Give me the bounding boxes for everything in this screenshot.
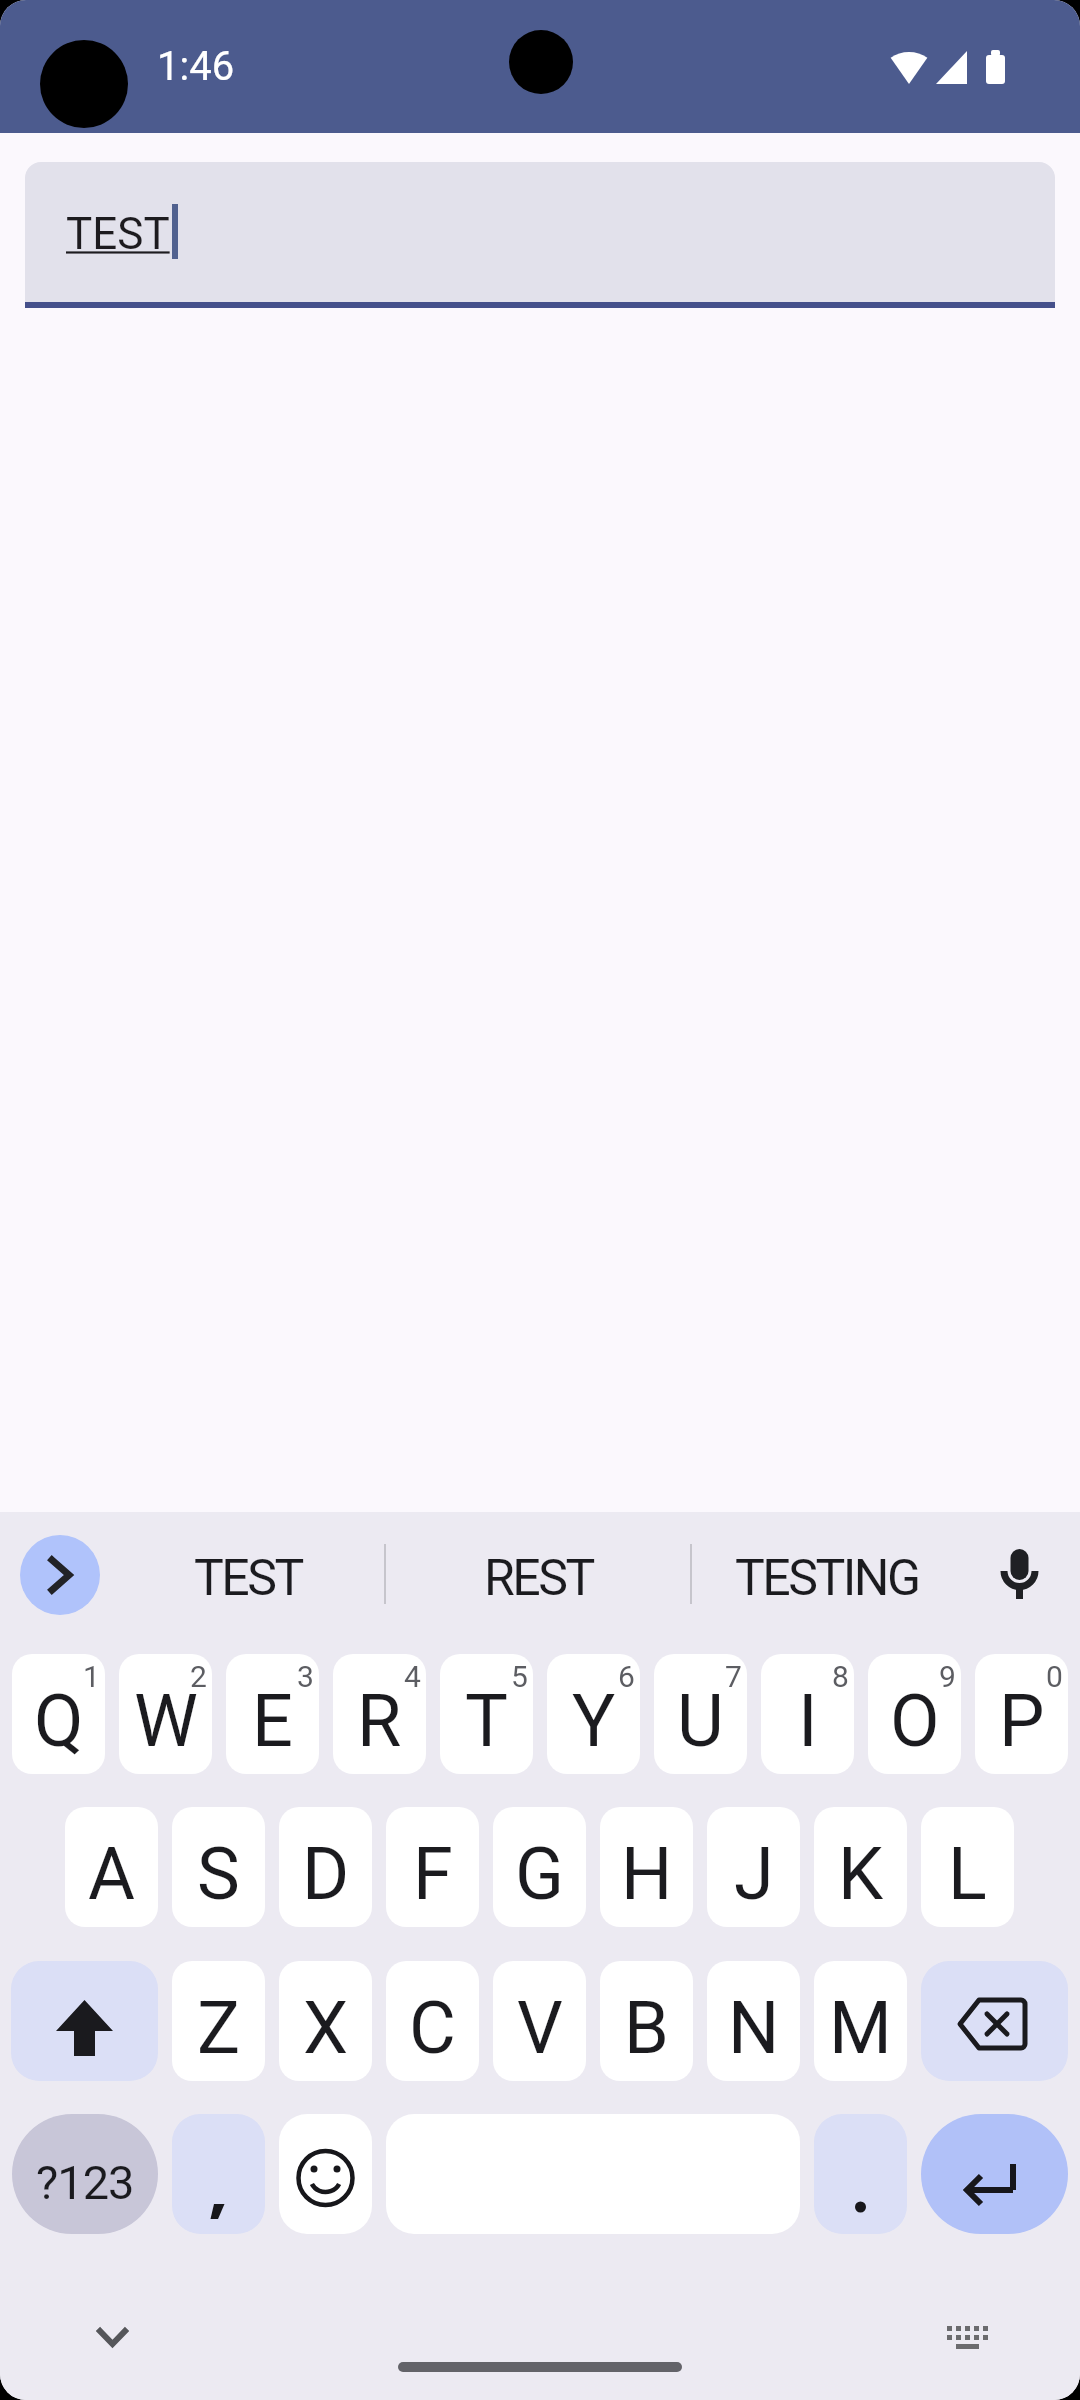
button[interactable]: [990, 1535, 1050, 1615]
staticText: K: [838, 1832, 884, 1916]
staticText: TEST: [66, 208, 170, 260]
staticText: ?123: [36, 2155, 134, 2210]
staticText: R: [357, 1679, 402, 1763]
button[interactable]: ?123: [12, 2114, 158, 2234]
button[interactable]: W: [119, 1654, 212, 1774]
staticText: 8: [832, 1659, 849, 1694]
staticText: TEST: [194, 1549, 302, 1608]
staticText: S: [197, 1832, 240, 1916]
button[interactable]: N: [707, 1961, 800, 2081]
staticText: U: [677, 1679, 724, 1763]
button[interactable]: C: [386, 1961, 479, 2081]
button[interactable]: V: [493, 1961, 586, 2081]
button[interactable]: U: [654, 1654, 747, 1774]
staticText: L: [948, 1832, 987, 1916]
staticText: V: [517, 1986, 563, 2070]
staticText: T: [465, 1679, 508, 1763]
staticText: O: [890, 1679, 940, 1763]
button[interactable]: O: [868, 1654, 961, 1774]
staticText: H: [621, 1832, 673, 1916]
button[interactable]: [85, 2310, 140, 2365]
button[interactable]: [11, 1961, 158, 2081]
staticText: 1: [83, 1659, 100, 1694]
staticText: 7: [725, 1659, 742, 1694]
button[interactable]: [279, 2114, 372, 2234]
staticText: X: [303, 1986, 349, 2070]
button[interactable]: Q: [12, 1654, 105, 1774]
button[interactable]: TEST: [25, 162, 1055, 302]
staticText: Y: [572, 1679, 616, 1763]
button[interactable]: J: [707, 1807, 800, 1927]
staticText: P: [999, 1679, 1045, 1763]
staticText: J: [734, 1832, 774, 1916]
button[interactable]: K: [814, 1807, 907, 1927]
staticText: 1:46: [157, 43, 235, 90]
button[interactable]: H: [600, 1807, 693, 1927]
staticText: 4: [404, 1659, 421, 1694]
staticText: TESTING: [735, 1549, 919, 1608]
staticText: N: [728, 1986, 780, 2070]
button[interactable]: [921, 2114, 1068, 2234]
button[interactable]: [935, 2310, 995, 2365]
staticText: 0: [1046, 1659, 1063, 1694]
button[interactable]: T: [440, 1654, 533, 1774]
button[interactable]: L: [921, 1807, 1014, 1927]
button[interactable]: S: [172, 1807, 265, 1927]
button[interactable]: D: [279, 1807, 372, 1927]
staticText: B: [624, 1986, 669, 2070]
button[interactable]: [20, 1535, 100, 1615]
staticText: A: [88, 1832, 135, 1916]
staticText: 6: [618, 1659, 635, 1694]
button[interactable]: REST: [385, 1531, 691, 1626]
staticText: 5: [511, 1659, 528, 1694]
button[interactable]: F: [386, 1807, 479, 1927]
button[interactable]: Z: [172, 1961, 265, 2081]
button[interactable]: [398, 2362, 682, 2372]
staticText: M: [829, 1986, 892, 2070]
button[interactable]: P: [975, 1654, 1068, 1774]
button[interactable]: I: [761, 1654, 854, 1774]
button[interactable]: [921, 1961, 1068, 2081]
button[interactable]: Y: [547, 1654, 640, 1774]
button[interactable]: TESTING: [691, 1531, 963, 1626]
staticText: Q: [34, 1679, 84, 1763]
staticText: E: [252, 1679, 293, 1763]
staticText: I: [798, 1679, 818, 1763]
button[interactable]: E: [226, 1654, 319, 1774]
staticText: REST: [484, 1549, 593, 1608]
button[interactable]: [172, 2114, 265, 2234]
staticText: W: [134, 1679, 198, 1763]
button[interactable]: [814, 2114, 907, 2234]
button[interactable]: M: [814, 1961, 907, 2081]
staticText: 2: [190, 1659, 207, 1694]
staticText: G: [515, 1832, 565, 1916]
staticText: C: [409, 1986, 456, 2070]
staticText: Z: [197, 1986, 241, 2070]
button[interactable]: A: [65, 1807, 158, 1927]
button[interactable]: G: [493, 1807, 586, 1927]
staticText: 9: [939, 1659, 956, 1694]
button[interactable]: TEST: [105, 1531, 390, 1626]
staticText: F: [413, 1832, 453, 1916]
button[interactable]: R: [333, 1654, 426, 1774]
button[interactable]: B: [600, 1961, 693, 2081]
staticText: D: [302, 1832, 350, 1916]
button[interactable]: X: [279, 1961, 372, 2081]
staticText: 3: [297, 1659, 314, 1694]
